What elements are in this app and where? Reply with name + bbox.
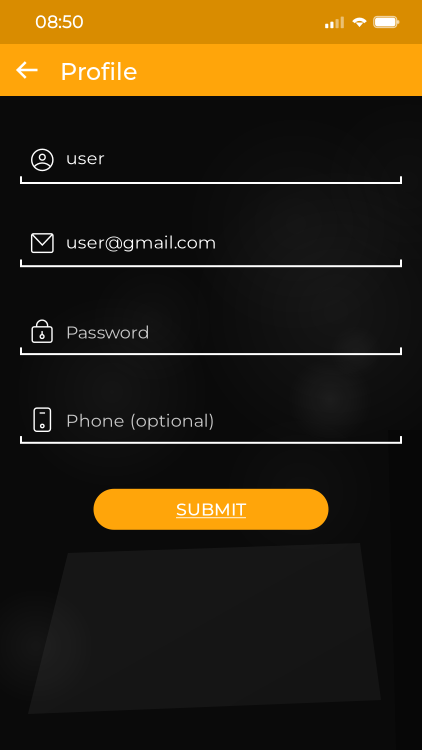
- button[interactable]: Password: [20, 319, 402, 355]
- staticText: user: [66, 147, 105, 169]
- staticText: Phone (optional): [66, 410, 215, 431]
- button[interactable]: Phone (optional): [20, 408, 402, 444]
- button[interactable]: SUBMIT: [93, 489, 328, 530]
- staticText: SUBMIT: [176, 499, 246, 520]
- button[interactable]: user: [20, 148, 402, 184]
- staticText: user@gmail.com: [66, 231, 217, 253]
- staticText: Password: [66, 321, 150, 343]
- button[interactable]: Back: [6, 44, 49, 96]
- staticText: Profile: [60, 57, 138, 86]
- button[interactable]: user@gmail.com: [20, 231, 402, 267]
- staticText: 08:50: [35, 11, 84, 33]
